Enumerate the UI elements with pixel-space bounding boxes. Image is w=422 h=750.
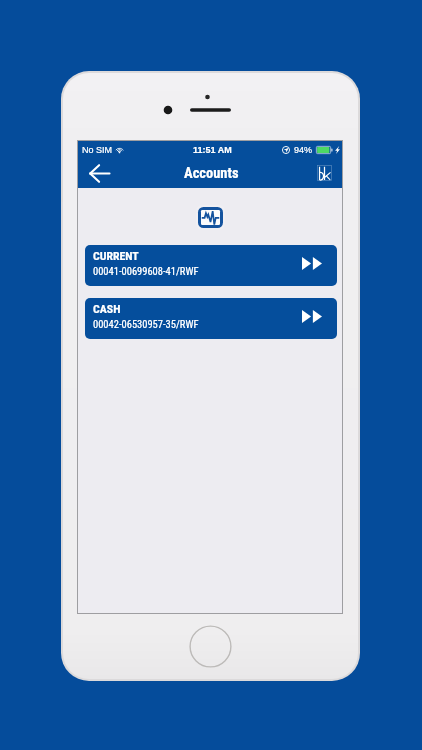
staticText: 94% (294, 145, 313, 155)
staticText: CASH (93, 302, 121, 316)
button[interactable]: Account activity monitor (196, 205, 225, 230)
staticText: No SIM (82, 145, 113, 155)
staticText: 00041-00699608-41/RWF (93, 265, 199, 277)
staticText: Accounts (184, 165, 239, 182)
staticText: 11:51 AM (193, 145, 232, 155)
staticText: 00042-06530957-35/RWF (93, 318, 199, 330)
staticText: CURRENT (93, 249, 139, 263)
button[interactable]: Bank of Kigali logo (317, 165, 332, 181)
button[interactable]: Back (83, 158, 115, 188)
button[interactable]: CASH (85, 298, 337, 339)
button[interactable]: CURRENT (85, 245, 337, 286)
